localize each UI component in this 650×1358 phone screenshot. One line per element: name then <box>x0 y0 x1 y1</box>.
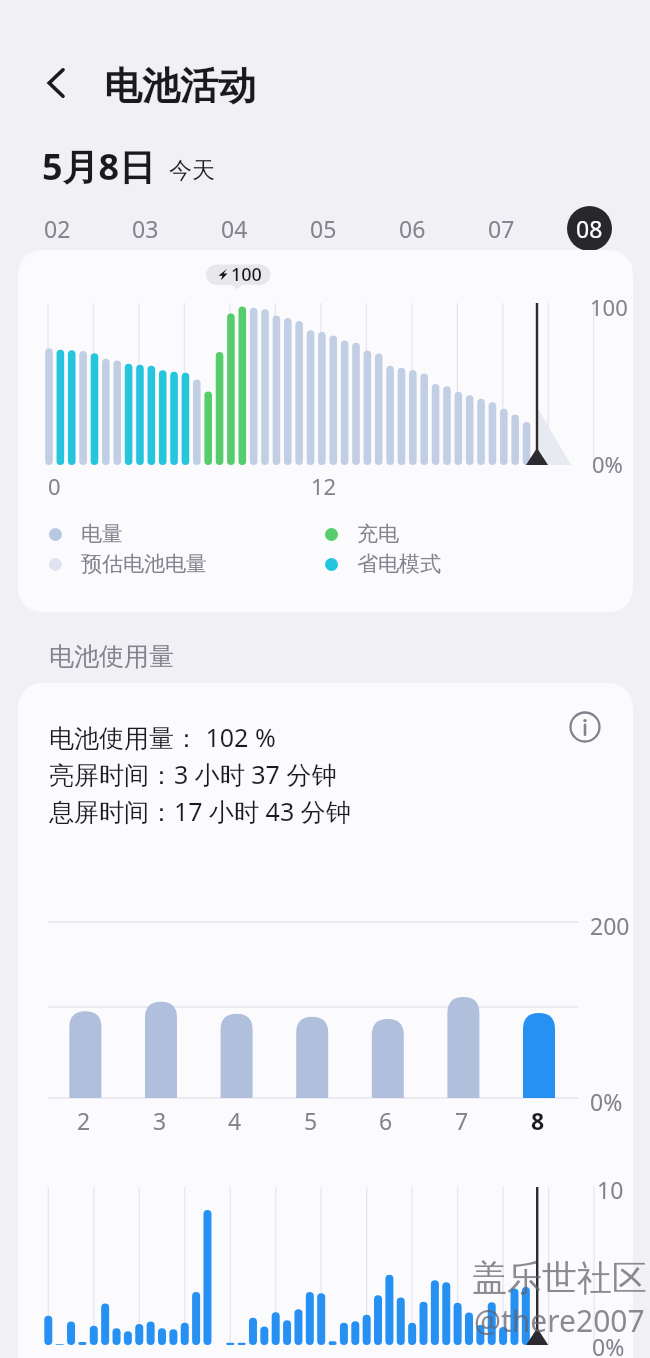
staticText: 0% <box>592 1331 625 1358</box>
staticText: 4 <box>228 1105 242 1136</box>
staticText: 0% <box>592 449 623 479</box>
staticText: 0% <box>590 1086 623 1117</box>
button[interactable]: 3 <box>140 1104 180 1136</box>
staticText: 06 <box>399 213 426 244</box>
button[interactable]: Back <box>29 55 85 111</box>
staticText: 04 <box>221 213 248 244</box>
staticText: 08 <box>576 213 603 244</box>
staticText: 电池活动 <box>104 62 256 110</box>
staticText: 100 <box>590 292 628 322</box>
staticText: 0 <box>48 471 61 501</box>
button[interactable]: 8 <box>518 1104 558 1136</box>
button[interactable]: 5 <box>291 1104 331 1136</box>
staticText: 5月8日 <box>42 142 156 191</box>
staticText: 100 <box>231 262 262 287</box>
staticText: 10 <box>597 1174 624 1205</box>
staticText: 充电 <box>357 521 399 547</box>
button[interactable]: 07 <box>473 200 529 256</box>
staticText: 息屏时间：17 小时 43 分钟 <box>49 794 351 828</box>
button[interactable]: 4 <box>215 1104 255 1136</box>
staticText: 3 <box>153 1105 167 1136</box>
button[interactable]: 05 <box>295 200 351 256</box>
button[interactable]: 03 <box>117 200 173 256</box>
staticText: 今天 <box>169 156 215 185</box>
staticText: 02 <box>44 213 71 244</box>
staticText: 6 <box>379 1105 393 1136</box>
staticText: 200 <box>590 910 630 941</box>
staticText: 电池使用量： 102 % <box>49 720 276 754</box>
staticText: 03 <box>132 213 159 244</box>
staticText: 07 <box>488 213 515 244</box>
staticText: 电量 <box>81 521 123 547</box>
staticText: 2 <box>77 1105 91 1136</box>
staticText: 8 <box>531 1105 545 1136</box>
button[interactable]: 电量 <box>49 520 123 548</box>
button[interactable]: 02 <box>29 200 85 256</box>
staticText: 电池使用量 <box>49 641 174 672</box>
button[interactable]: 04 <box>206 200 262 256</box>
staticText: 盖乐世社区 <box>472 1256 647 1300</box>
button[interactable]: 充电 <box>325 520 399 548</box>
staticText: 05 <box>310 213 337 244</box>
button[interactable]: 06 <box>384 200 440 256</box>
staticText: 省电模式 <box>357 551 441 577</box>
button[interactable]: 2 <box>64 1104 104 1136</box>
button[interactable]: 08 <box>561 200 617 256</box>
staticText: 亮屏时间：3 小时 37 分钟 <box>49 757 337 791</box>
staticText: 预估电池电量 <box>81 551 207 577</box>
staticText: 5 <box>304 1105 318 1136</box>
staticText: 12 <box>311 471 337 501</box>
button[interactable]: 6 <box>366 1104 406 1136</box>
staticText: 7 <box>455 1105 469 1136</box>
button[interactable]: 预估电池电量 <box>49 550 207 578</box>
button[interactable]: Information <box>566 708 604 746</box>
button[interactable]: 7 <box>442 1104 482 1136</box>
staticText: @there2007 <box>474 1300 645 1341</box>
button[interactable]: 省电模式 <box>325 550 441 578</box>
